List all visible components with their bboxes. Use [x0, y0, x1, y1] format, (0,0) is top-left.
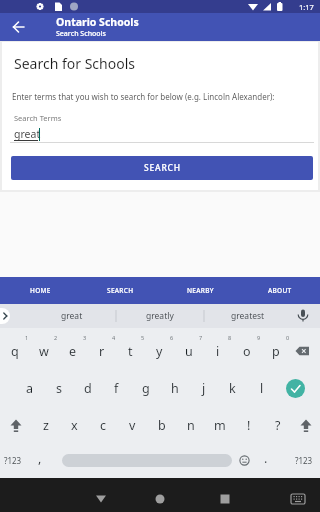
button[interactable]: . [264, 450, 268, 467]
staticText: . [264, 450, 268, 467]
button[interactable] [0, 407, 31, 443]
button[interactable]: n [176, 407, 205, 443]
button[interactable]: l [247, 370, 276, 407]
button[interactable]: u [174, 332, 203, 370]
button[interactable] [0, 478, 106, 512]
staticText: 5 [141, 334, 145, 341]
button[interactable]: c [89, 407, 118, 443]
staticText: 6 [170, 334, 174, 341]
staticText: great [61, 310, 83, 322]
staticText: ? [275, 417, 281, 434]
button[interactable] [106, 478, 213, 512]
button[interactable]: ABOUT [240, 277, 320, 304]
button[interactable] [8, 13, 28, 41]
button[interactable]: a [15, 370, 44, 407]
staticText: 3 [83, 334, 87, 341]
button[interactable]: SEARCH [11, 156, 313, 180]
staticText: j [202, 380, 206, 397]
staticText: r [99, 343, 105, 360]
staticText: x [71, 417, 78, 434]
staticText: s [56, 380, 62, 397]
button[interactable]: e [58, 332, 87, 370]
staticText: greatest [231, 310, 265, 322]
staticText: z [43, 417, 49, 434]
button[interactable]: ? [263, 407, 292, 443]
button[interactable]: ?123 [4, 455, 22, 466]
staticText: i [216, 343, 220, 360]
button[interactable]: t [116, 332, 145, 370]
button[interactable]: r [87, 332, 116, 370]
button[interactable] [62, 454, 232, 467]
staticText: great [14, 127, 41, 141]
staticText: w [39, 343, 49, 360]
button[interactable]: SEARCH [80, 277, 160, 304]
staticText: Search Schools [56, 29, 106, 39]
staticText: ?123 [4, 455, 22, 466]
staticText: greatly [146, 310, 174, 322]
button[interactable] [239, 455, 250, 466]
staticText: Enter terms that you wish to search for … [12, 91, 275, 102]
staticText: c [100, 417, 107, 434]
button[interactable]: great [28, 304, 116, 328]
staticText: ! [247, 417, 251, 434]
button[interactable]: greatest [204, 304, 292, 328]
staticText: 1:17 [299, 2, 314, 12]
button[interactable]: , [38, 450, 42, 467]
staticText: o [243, 343, 251, 360]
button[interactable] [213, 478, 320, 512]
staticText: Ontario Schools [56, 15, 139, 29]
staticText: a [26, 380, 34, 397]
staticText: l [260, 380, 264, 397]
button[interactable]: z [31, 407, 60, 443]
staticText: 0 [286, 334, 290, 341]
button[interactable]: m [205, 407, 234, 443]
button[interactable]: j [189, 370, 218, 407]
staticText: 8 [228, 334, 232, 341]
button[interactable] [290, 332, 320, 370]
staticText: NEARBY [187, 286, 214, 295]
button[interactable]: h [160, 370, 189, 407]
staticText: m [214, 417, 226, 434]
button[interactable]: q [0, 332, 29, 370]
staticText: 2 [54, 334, 58, 341]
button[interactable]: d [73, 370, 102, 407]
staticText: ABOUT [268, 286, 292, 295]
staticText: k [229, 380, 236, 397]
staticText: ?123 [295, 455, 313, 466]
staticText: 1 [25, 334, 29, 341]
button[interactable]: y [145, 332, 174, 370]
staticText: q [11, 343, 19, 360]
button[interactable]: ! [234, 407, 263, 443]
button[interactable]: p [261, 332, 290, 370]
button[interactable]: x [60, 407, 89, 443]
staticText: , [38, 450, 42, 467]
button[interactable]: k [218, 370, 247, 407]
button[interactable]: f [102, 370, 131, 407]
staticText: Search Terms [14, 113, 62, 123]
staticText: u [185, 343, 193, 360]
button[interactable] [0, 308, 10, 324]
button[interactable]: v [118, 407, 147, 443]
staticText: p [272, 343, 280, 360]
staticText: 7 [199, 334, 203, 341]
staticText: 4 [112, 334, 116, 341]
staticText: g [142, 380, 150, 397]
staticText: n [187, 417, 195, 434]
button[interactable]: s [44, 370, 73, 407]
button[interactable]: HOME [0, 277, 80, 304]
button[interactable]: w [29, 332, 58, 370]
button[interactable]: o [232, 332, 261, 370]
button[interactable]: greatly [116, 304, 204, 328]
button[interactable]: NEARBY [160, 277, 240, 304]
button[interactable]: ?123 [295, 455, 313, 466]
staticText: d [84, 380, 92, 397]
button[interactable] [286, 379, 305, 398]
button[interactable] [292, 407, 320, 443]
staticText: SEARCH [144, 162, 181, 174]
staticText: t [128, 343, 133, 360]
button[interactable]: i [203, 332, 232, 370]
button[interactable]: g [131, 370, 160, 407]
staticText: HOME [30, 286, 51, 295]
button[interactable]: b [147, 407, 176, 443]
staticText: e [69, 343, 77, 360]
